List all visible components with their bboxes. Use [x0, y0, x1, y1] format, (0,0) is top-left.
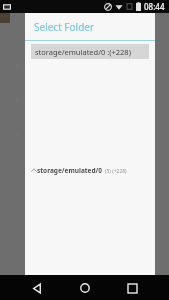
button[interactable]: storage/emulated/0 [31, 66, 149, 275]
button[interactable]: Back [26, 277, 48, 299]
staticText: 08:44 [144, 1, 165, 12]
staticText: storage/emulated/0 :(+228) [35, 47, 131, 57]
button[interactable]: storage/emulated/0 :(+228) [31, 44, 149, 59]
button[interactable]: Home [74, 277, 96, 299]
button[interactable]: Recents [121, 277, 143, 299]
staticText: Select Folder [34, 20, 95, 34]
staticText: (5) (+228) [105, 168, 127, 175]
staticText: storage/emulated/0 [37, 166, 103, 175]
